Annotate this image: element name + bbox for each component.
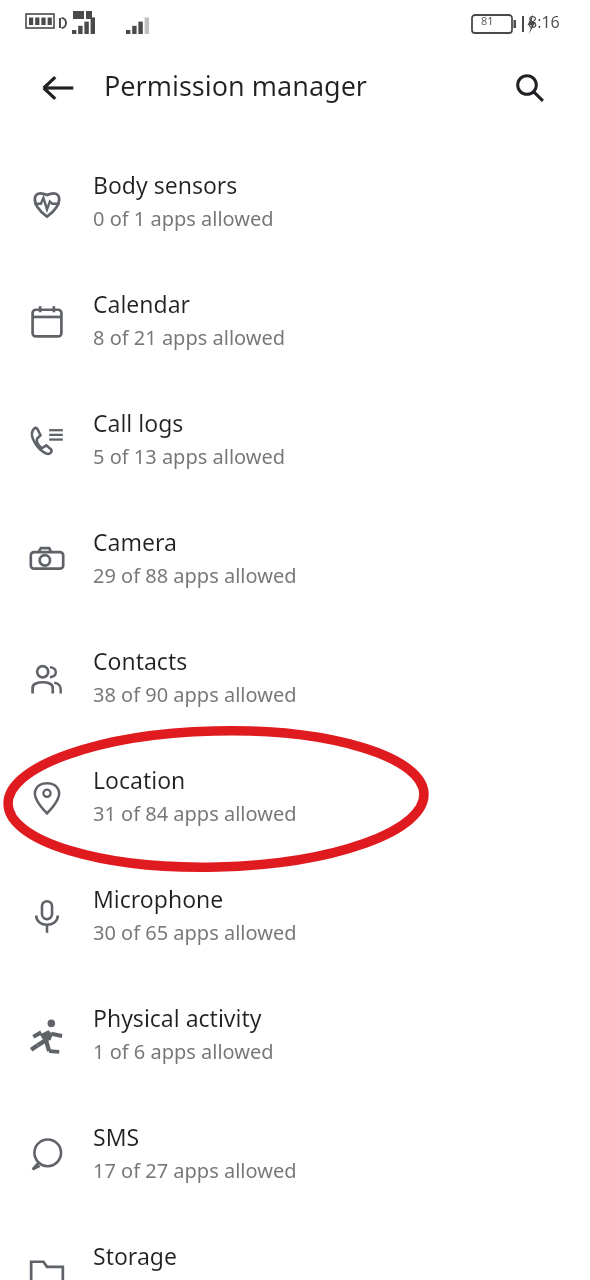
staticText: Calendar: [93, 288, 191, 319]
staticText: 30 of 65 apps allowed: [93, 919, 297, 946]
staticText: Physical activity: [93, 1002, 262, 1033]
button[interactable]: Storage: [0, 1214, 590, 1280]
button[interactable]: Microphone: [0, 857, 590, 976]
staticText: 81: [481, 13, 494, 28]
staticText: 5 of 13 apps allowed: [93, 443, 286, 470]
button[interactable]: Camera: [0, 500, 590, 619]
staticText: Microphone: [93, 883, 224, 914]
staticText: 38 of 90 apps allowed: [93, 681, 297, 708]
staticText: Permission manager: [104, 67, 368, 104]
button[interactable]: Physical activity: [0, 976, 590, 1095]
button[interactable]: Search: [502, 60, 558, 116]
staticText: Camera: [93, 526, 177, 557]
button[interactable]: Contacts: [0, 619, 590, 738]
button[interactable]: Calendar: [0, 262, 590, 381]
staticText: 0 of 1 apps allowed: [93, 205, 274, 232]
staticText: 29 of 88 apps allowed: [93, 562, 297, 589]
button[interactable]: SMS: [0, 1095, 590, 1214]
staticText: Location: [93, 764, 186, 795]
button[interactable]: Call logs: [0, 381, 590, 500]
staticText: Storage: [93, 1240, 177, 1271]
button[interactable]: Location: [0, 738, 590, 857]
staticText: Call logs: [93, 407, 184, 438]
staticText: 17 of 27 apps allowed: [93, 1157, 297, 1184]
staticText: Body sensors: [93, 169, 238, 200]
staticText: Contacts: [93, 645, 188, 676]
staticText: 31 of 84 apps allowed: [93, 800, 297, 827]
staticText: SMS: [93, 1121, 140, 1152]
staticText: 8 of 21 apps allowed: [93, 324, 286, 351]
staticText: 8:16: [528, 11, 560, 33]
button[interactable]: Body sensors: [0, 143, 590, 262]
staticText: 1 of 6 apps allowed: [93, 1038, 274, 1065]
button[interactable]: Back: [30, 60, 86, 116]
